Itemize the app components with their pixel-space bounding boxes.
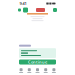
- button[interactable]: Tab 2: [33, 66, 42, 75]
- button[interactable]: Continue: [19, 59, 56, 64]
- button[interactable]: Tab 3: [42, 66, 50, 75]
- button[interactable]: Tab 4: [50, 66, 58, 75]
- staticText: Continue: [28, 59, 47, 65]
- button[interactable]: Menu: [18, 8, 21, 11]
- button[interactable]: Cart: [53, 8, 57, 12]
- button[interactable]: Tab 0: [17, 66, 25, 75]
- button[interactable]: Profile: [23, 7, 28, 12]
- button[interactable]: Tab 1: [25, 66, 33, 75]
- staticText: 9:41: [19, 1, 26, 6]
